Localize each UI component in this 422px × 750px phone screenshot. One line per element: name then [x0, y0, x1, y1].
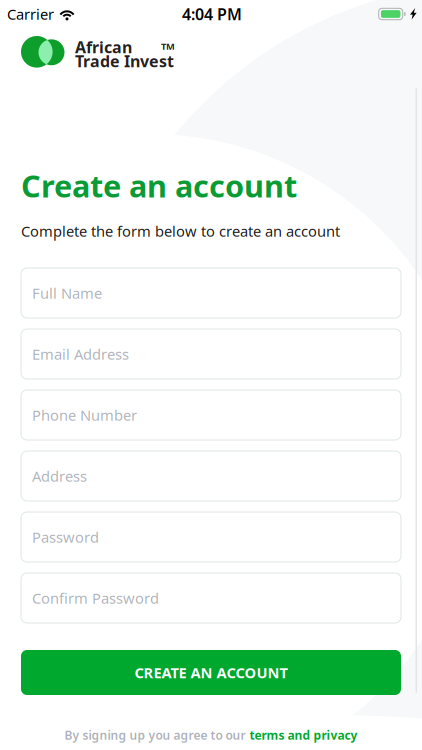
staticText: Complete the form below to create an acc…: [21, 221, 340, 241]
staticText: African: [75, 36, 132, 58]
button[interactable]: Phone Number: [21, 390, 401, 440]
staticText: Trade Invest: [75, 50, 174, 72]
button[interactable]: terms and privacy: [249, 727, 357, 743]
button[interactable]: Address: [21, 451, 401, 501]
staticText: Email Address: [32, 344, 129, 364]
staticText: 4:04 PM: [182, 3, 242, 25]
staticText: Phone Number: [32, 405, 137, 425]
staticText: Carrier: [7, 4, 54, 24]
button[interactable]: Confirm Password: [21, 573, 401, 623]
button[interactable]: Full Name: [21, 268, 401, 318]
staticText: Password: [32, 527, 99, 547]
staticText: Confirm Password: [32, 588, 159, 608]
staticText: Full Name: [32, 283, 102, 303]
staticText: By signing up you agree to our: [64, 727, 245, 743]
button[interactable]: Email Address: [21, 329, 401, 379]
staticText: CREATE AN ACCOUNT: [134, 663, 287, 682]
staticText: Address: [32, 466, 87, 486]
staticText: Create an account: [21, 165, 297, 206]
staticText: TM: [161, 40, 175, 52]
button[interactable]: CREATE AN ACCOUNT: [21, 650, 401, 695]
staticText: terms and privacy: [249, 727, 357, 743]
button[interactable]: Password: [21, 512, 401, 562]
